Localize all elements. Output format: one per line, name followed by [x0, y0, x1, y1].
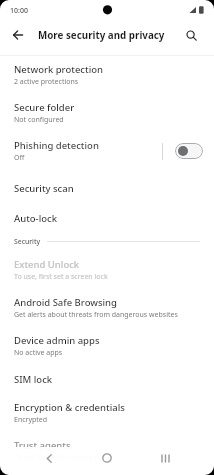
- button[interactable]: Secure folder: [0, 94, 214, 132]
- staticText: Android Safe Browsing: [14, 296, 117, 309]
- staticText: Security scan: [14, 182, 74, 195]
- button[interactable]: Auto-lock: [0, 204, 214, 232]
- staticText: Secure folder: [14, 101, 75, 114]
- button[interactable]: Android Safe Browsing: [0, 289, 214, 327]
- button[interactable]: Device admin apps: [0, 327, 214, 365]
- button[interactable]: Trust agents: [0, 432, 214, 470]
- staticText: 2 active protections: [14, 77, 79, 87]
- staticText: Device admin apps: [14, 334, 100, 347]
- staticText: Encryption & credentials: [14, 401, 125, 414]
- staticText: Auto-lock: [14, 212, 58, 225]
- staticText: Network protection: [14, 63, 103, 76]
- staticText: Get alerts about threats from dangerous …: [14, 310, 178, 320]
- staticText: SIM lock: [14, 373, 53, 386]
- staticText: Phishing detection: [14, 139, 99, 152]
- button[interactable]: Network protection: [0, 56, 214, 94]
- button[interactable]: [175, 143, 203, 159]
- button[interactable]: Encryption & credentials: [0, 394, 214, 432]
- staticText: More security and privacy: [38, 29, 165, 42]
- staticText: Trust agents: [14, 439, 71, 452]
- staticText: Not configured: [14, 115, 64, 125]
- staticText: 10:00: [10, 6, 28, 16]
- button[interactable]: [0, 22, 36, 48]
- button[interactable]: [174, 22, 208, 48]
- staticText: No active apps: [14, 348, 63, 358]
- staticText: Off: [14, 153, 25, 163]
- button[interactable]: SIM lock: [0, 365, 214, 394]
- button[interactable]: [78, 447, 136, 469]
- button[interactable]: [20, 447, 78, 469]
- staticText: To use, first set a screen lock: [14, 453, 108, 463]
- button[interactable]: Phishing detection: [0, 132, 214, 170]
- button[interactable]: Security scan: [0, 173, 214, 204]
- staticText: Extend Unlock: [14, 258, 80, 271]
- staticText: Security: [14, 237, 41, 246]
- button[interactable]: [136, 447, 194, 469]
- staticText: To use, first set a screen lock: [14, 272, 108, 282]
- button[interactable]: Extend Unlock: [0, 251, 214, 289]
- staticText: Encrypted: [14, 415, 48, 425]
